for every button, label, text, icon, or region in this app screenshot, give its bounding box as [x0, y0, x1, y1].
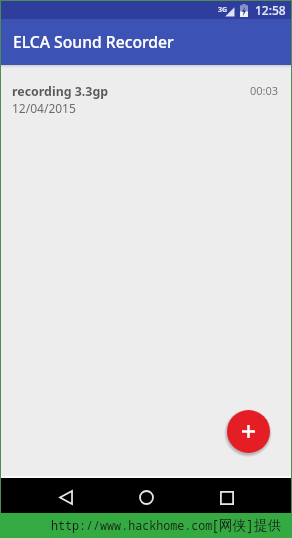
- button[interactable]: recording 3.3gp: [1, 79, 291, 119]
- staticText: http://www.hackhome.com: [51, 517, 213, 533]
- staticText: recording 3.3gp: [12, 83, 109, 100]
- button[interactable]: Back: [43, 481, 89, 514]
- staticText: 12/04/2015: [12, 100, 76, 116]
- button[interactable]: Recent apps: [204, 481, 250, 514]
- staticText: ELCA Sound Recorder: [13, 31, 174, 52]
- staticText: 12:58: [255, 2, 286, 18]
- button[interactable]: New recording: [227, 410, 270, 453]
- staticText: 3G: [218, 5, 228, 15]
- button[interactable]: Home: [123, 481, 169, 514]
- staticText: [网侠]提供: [211, 516, 282, 534]
- staticText: 00:03: [250, 83, 279, 98]
